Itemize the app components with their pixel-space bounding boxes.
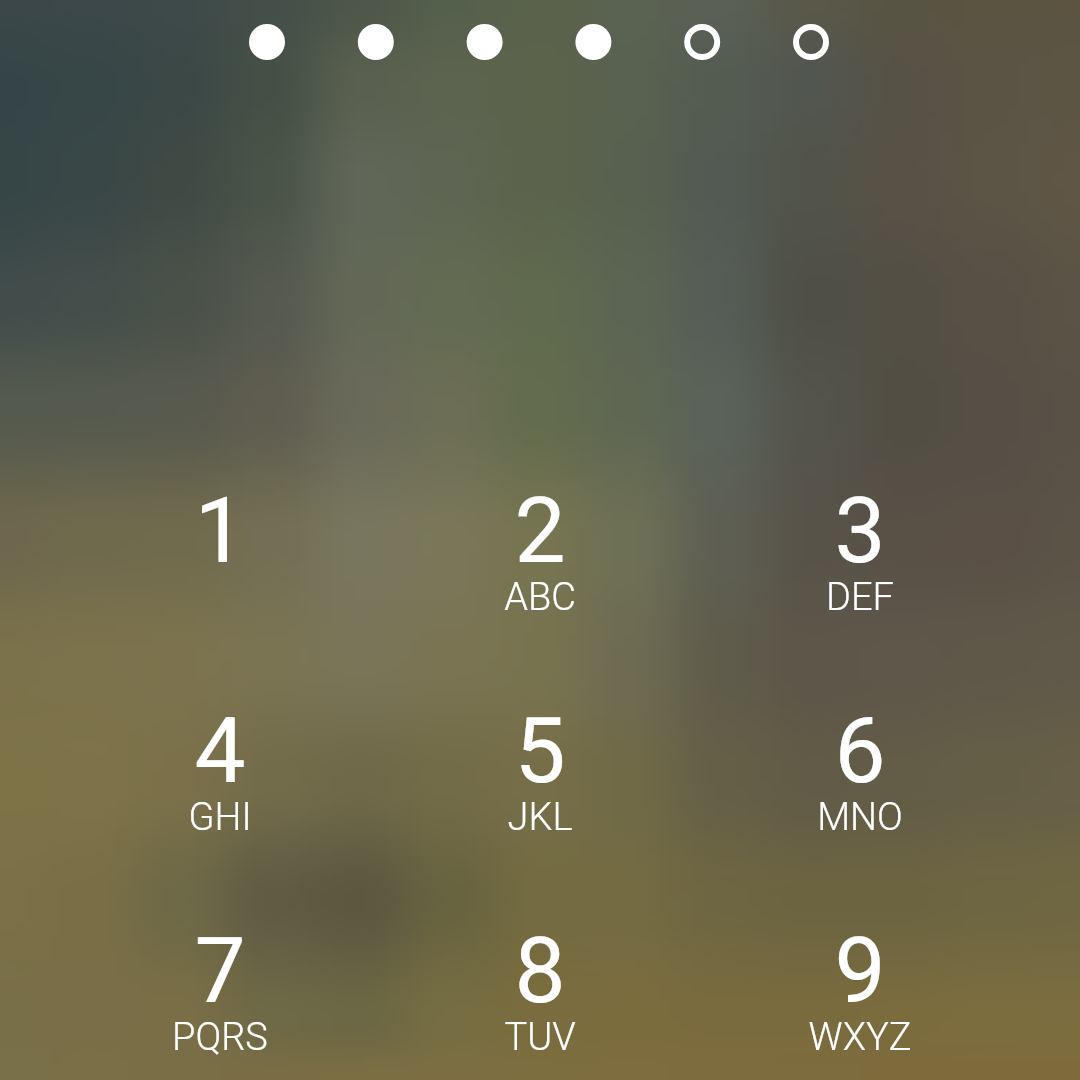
other: PIN entry progress, 4 of 6 digits [240, 12, 840, 72]
staticText: 3 [750, 478, 970, 598]
staticText: 4 [110, 698, 330, 818]
staticText: WXYZ [750, 1015, 970, 1075]
button[interactable]: 9 WXYZ [750, 864, 970, 1064]
button[interactable]: 8 TUV [430, 864, 650, 1064]
button[interactable]: 1 [110, 424, 330, 624]
staticText: 8 [430, 918, 650, 1038]
button[interactable]: 2 ABC [430, 424, 650, 624]
staticText: JKL [430, 795, 650, 855]
staticText: TUV [430, 1015, 650, 1075]
staticText: MNO [750, 795, 970, 855]
staticText: DEF [750, 575, 970, 635]
staticText: 2 [430, 478, 650, 598]
staticText: 9 [750, 918, 970, 1038]
button[interactable]: 4 GHI [110, 644, 330, 844]
button[interactable]: 7 PQRS [110, 864, 330, 1064]
staticText: GHI [110, 795, 330, 855]
staticText: 7 [110, 918, 330, 1038]
staticText: 5 [430, 698, 650, 818]
staticText: 6 [750, 698, 970, 818]
button[interactable]: 6 MNO [750, 644, 970, 844]
button[interactable]: 3 DEF [750, 424, 970, 624]
staticText: ABC [430, 575, 650, 635]
button[interactable]: 5 JKL [430, 644, 650, 844]
staticText: PQRS [110, 1015, 330, 1075]
staticText: 1 [110, 478, 330, 598]
